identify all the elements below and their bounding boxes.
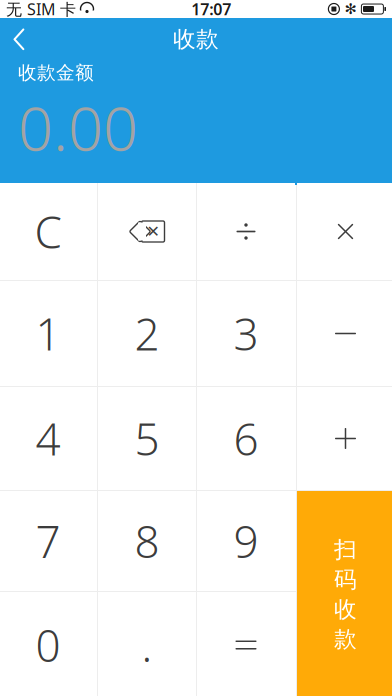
staticText: 17:07 [191,0,231,20]
button[interactable]: 2 [98,281,196,386]
staticText: 收款金额 [18,61,94,84]
button[interactable]: 返回 [0,20,26,58]
staticText: 6 [233,409,258,468]
staticText: ✻ [344,1,356,17]
button[interactable]: 3 [197,281,295,386]
staticText: 8 [134,512,159,570]
staticText: ✕ [146,222,159,241]
staticText: 码 [334,566,357,593]
button[interactable]: 4 [0,387,97,490]
staticText: 1 [35,304,60,363]
button[interactable]: 加 [297,387,392,490]
button[interactable]: 1 [0,281,97,386]
button[interactable]: 6 [197,387,295,490]
button[interactable]: 乘 [297,183,392,280]
button[interactable]: 等于 [197,592,295,696]
staticText: 收款 [173,25,219,53]
staticText: 5 [134,409,159,468]
staticText: 4 [35,409,60,468]
button[interactable]: 减 [297,281,392,386]
button[interactable]: 5 [98,387,196,490]
button[interactable]: 退格 [98,183,196,280]
staticText: 扫 [334,536,357,564]
staticText: 收 [334,595,357,623]
staticText: . [141,616,152,674]
staticText: 7 [35,512,60,570]
staticText: 2 [134,304,159,363]
button[interactable]: 0 [0,592,97,696]
button[interactable]: 小数点 [98,592,196,696]
button[interactable]: 9 [197,491,295,591]
staticText: 0 [35,616,60,674]
staticText: C [34,202,61,261]
staticText: 款 [334,625,357,653]
staticText: 9 [233,512,258,570]
button[interactable]: 7 [0,491,97,591]
staticText: 3 [233,304,258,363]
staticText: 0.00 [18,86,138,168]
button[interactable]: 除 [197,183,295,280]
button[interactable]: 清除 [0,183,97,280]
staticText: 无 SIM 卡 [6,0,76,20]
button[interactable]: 扫 [297,491,392,696]
button[interactable]: 8 [98,491,196,591]
